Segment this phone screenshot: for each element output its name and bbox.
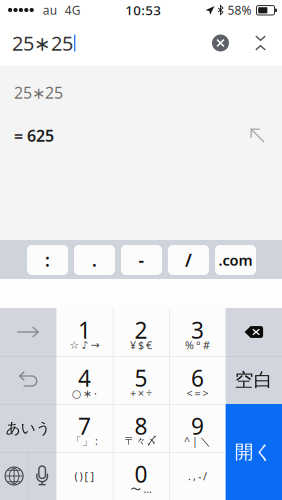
button[interactable]: 8 bbox=[113, 404, 169, 452]
staticText: . bbox=[92, 248, 97, 271]
staticText: 1 bbox=[78, 315, 91, 345]
staticText: : bbox=[45, 248, 50, 271]
button[interactable]: 0 bbox=[113, 452, 169, 500]
staticText: 0 bbox=[134, 459, 147, 489]
staticText: 10:53 bbox=[125, 1, 161, 19]
staticText: 9 bbox=[191, 411, 204, 441]
button[interactable]: Switch keyboard bbox=[0, 452, 28, 500]
button[interactable]: 7 bbox=[56, 404, 113, 452]
button[interactable]: : bbox=[27, 245, 68, 275]
button[interactable]: Previous or next match bbox=[232, 28, 282, 57]
staticText: au bbox=[43, 2, 57, 18]
staticText: 8 bbox=[134, 411, 147, 441]
staticText: 25∗25 bbox=[14, 82, 63, 103]
staticText: 5 bbox=[134, 363, 147, 393]
button[interactable]: .com bbox=[215, 245, 256, 275]
button[interactable]: 1 bbox=[56, 308, 113, 356]
staticText: 3 bbox=[191, 315, 204, 345]
staticText: 25∗25 bbox=[12, 30, 73, 56]
staticText: 「」 : bbox=[71, 434, 98, 448]
staticText: 4 bbox=[78, 363, 91, 393]
staticText: - bbox=[138, 248, 144, 271]
staticText: + × ÷ bbox=[130, 386, 152, 400]
staticText: 〒々〆 bbox=[124, 434, 157, 447]
button[interactable]: Next candidate bbox=[0, 308, 56, 356]
staticText: ( ) [ ] bbox=[75, 469, 95, 483]
staticText: 空白 bbox=[235, 368, 273, 391]
staticText: 7 bbox=[78, 411, 91, 441]
button[interactable]: . bbox=[74, 245, 115, 275]
button[interactable]: Delete bbox=[226, 308, 282, 356]
button[interactable]: Dictation bbox=[28, 452, 56, 500]
staticText: = 625 bbox=[14, 125, 54, 146]
staticText: 2 bbox=[134, 315, 147, 345]
staticText: 6 bbox=[191, 363, 204, 393]
button[interactable]: - bbox=[121, 245, 162, 275]
button[interactable]: 4 bbox=[56, 356, 113, 404]
staticText: / bbox=[185, 248, 192, 271]
staticText: 58% bbox=[227, 2, 251, 18]
staticText: < = > bbox=[186, 386, 208, 400]
button[interactable]: . , - / bbox=[169, 452, 226, 500]
staticText: % ° # bbox=[185, 338, 210, 352]
button[interactable]: 9 bbox=[169, 404, 226, 452]
staticText: ☆ ♪ → bbox=[70, 339, 100, 351]
button[interactable]: Clear text bbox=[209, 28, 232, 57]
button[interactable]: 空白 bbox=[226, 356, 282, 404]
button[interactable]: ( ) [ ] bbox=[56, 452, 113, 500]
staticText: ○ ∗ · bbox=[72, 386, 97, 400]
staticText: あいう bbox=[6, 419, 51, 437]
staticText: 〜 … bbox=[130, 482, 151, 496]
button[interactable]: 25∗25 bbox=[0, 66, 282, 154]
button[interactable]: 2 bbox=[113, 308, 169, 356]
button[interactable]: 3 bbox=[169, 308, 226, 356]
staticText: 開く bbox=[235, 440, 273, 463]
button[interactable]: / bbox=[168, 245, 209, 275]
button[interactable]: 開く bbox=[226, 404, 282, 500]
button[interactable]: あいう bbox=[0, 404, 56, 452]
staticText: .com bbox=[218, 250, 252, 270]
staticText: ¥ $ € bbox=[130, 338, 152, 352]
staticText: ^ | ＼ bbox=[184, 434, 211, 448]
button[interactable]: Undo bbox=[0, 356, 56, 404]
staticText: 4G bbox=[65, 2, 81, 18]
staticText: . , - / bbox=[188, 469, 207, 483]
button[interactable]: 6 bbox=[169, 356, 226, 404]
button[interactable]: 5 bbox=[113, 356, 169, 404]
